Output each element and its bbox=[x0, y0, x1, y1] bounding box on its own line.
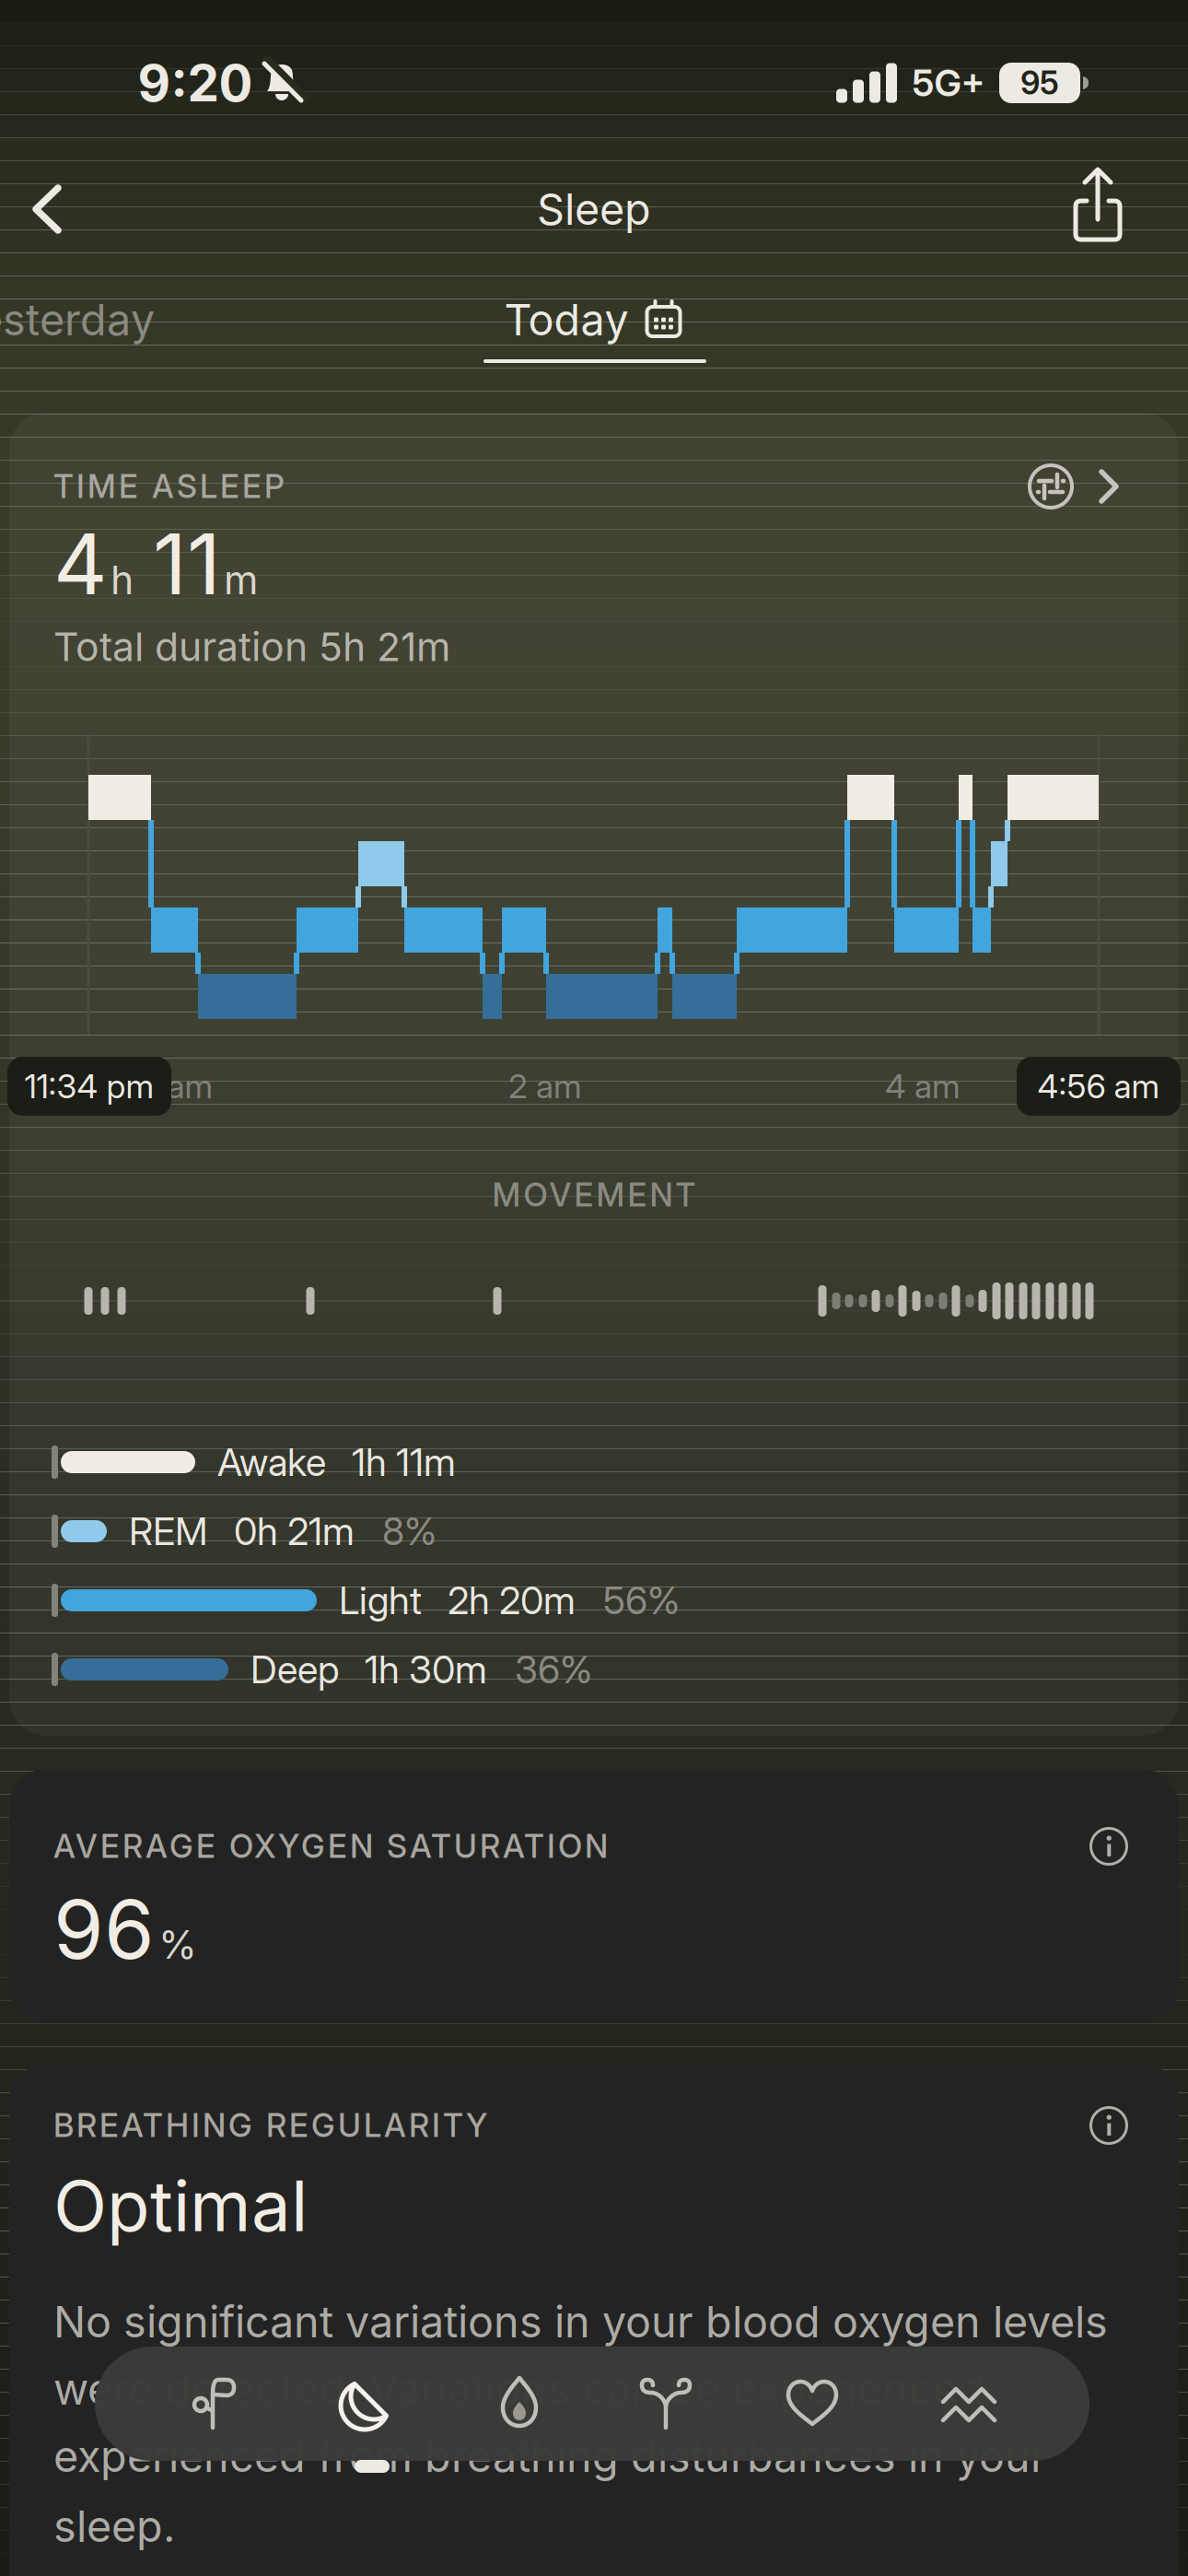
staticText: 95 bbox=[1020, 64, 1059, 102]
button[interactable] bbox=[629, 2367, 703, 2441]
staticText: m bbox=[224, 557, 258, 603]
staticText: 4:56 am bbox=[1037, 1067, 1160, 1106]
staticText: 36% bbox=[515, 1647, 592, 1692]
staticText: MOVEMENT bbox=[492, 1176, 696, 1214]
staticText: 2h 20m bbox=[448, 1578, 576, 1623]
staticText: TIME ASLEEP bbox=[53, 468, 285, 505]
staticText: Optimal bbox=[53, 2164, 308, 2247]
staticText: % bbox=[158, 1921, 197, 1968]
staticText: 1h 30m bbox=[365, 1647, 487, 1692]
staticText: sleep. bbox=[53, 2501, 175, 2552]
staticText: 1h 11m bbox=[352, 1440, 456, 1485]
button[interactable]: Today bbox=[504, 294, 682, 345]
staticText: 96 bbox=[53, 1881, 155, 1977]
button[interactable] bbox=[775, 2367, 849, 2441]
staticText: 12 am bbox=[128, 1067, 213, 1106]
staticText: 56% bbox=[603, 1578, 680, 1623]
staticText: Light bbox=[339, 1578, 422, 1623]
button[interactable] bbox=[179, 2367, 252, 2441]
button[interactable] bbox=[29, 185, 77, 233]
button[interactable] bbox=[932, 2367, 1006, 2441]
staticText: Total duration 5h 21m bbox=[53, 624, 450, 670]
staticText: AVERAGE OXYGEN SATURATION bbox=[53, 1828, 608, 1865]
staticText: BREATHING REGULARITY bbox=[53, 2107, 487, 2144]
staticText: Sleep bbox=[537, 184, 651, 235]
button[interactable]: Yesterday bbox=[0, 294, 155, 345]
button[interactable] bbox=[1089, 1827, 1128, 1866]
button[interactable] bbox=[1076, 166, 1131, 243]
staticText: 8% bbox=[382, 1509, 437, 1554]
button[interactable] bbox=[1028, 463, 1120, 509]
button[interactable] bbox=[1089, 2106, 1128, 2145]
staticText: REM bbox=[129, 1509, 208, 1554]
staticText: No significant variations in your blood … bbox=[53, 2296, 1108, 2347]
staticText: were detected. Variations can be experie… bbox=[53, 2364, 984, 2414]
staticText: 9:20 bbox=[138, 53, 253, 113]
staticText: Deep bbox=[250, 1647, 339, 1692]
button[interactable] bbox=[330, 2367, 403, 2441]
staticText: h bbox=[111, 557, 134, 603]
staticText: 5G+ bbox=[912, 61, 985, 105]
staticText: 2 am bbox=[508, 1067, 582, 1106]
staticText: 11 bbox=[153, 515, 221, 613]
button[interactable] bbox=[483, 2367, 556, 2441]
staticText: 11:34 pm bbox=[24, 1067, 154, 1106]
staticText: Awake bbox=[217, 1440, 326, 1485]
staticText: 0h 21m bbox=[234, 1509, 355, 1554]
staticText: Today bbox=[504, 294, 629, 345]
staticText: experienced from breathing disturbances … bbox=[53, 2431, 1047, 2482]
staticText: 4 bbox=[53, 515, 108, 613]
staticText: Yesterday bbox=[0, 294, 155, 345]
staticText: 4 am bbox=[885, 1067, 961, 1106]
